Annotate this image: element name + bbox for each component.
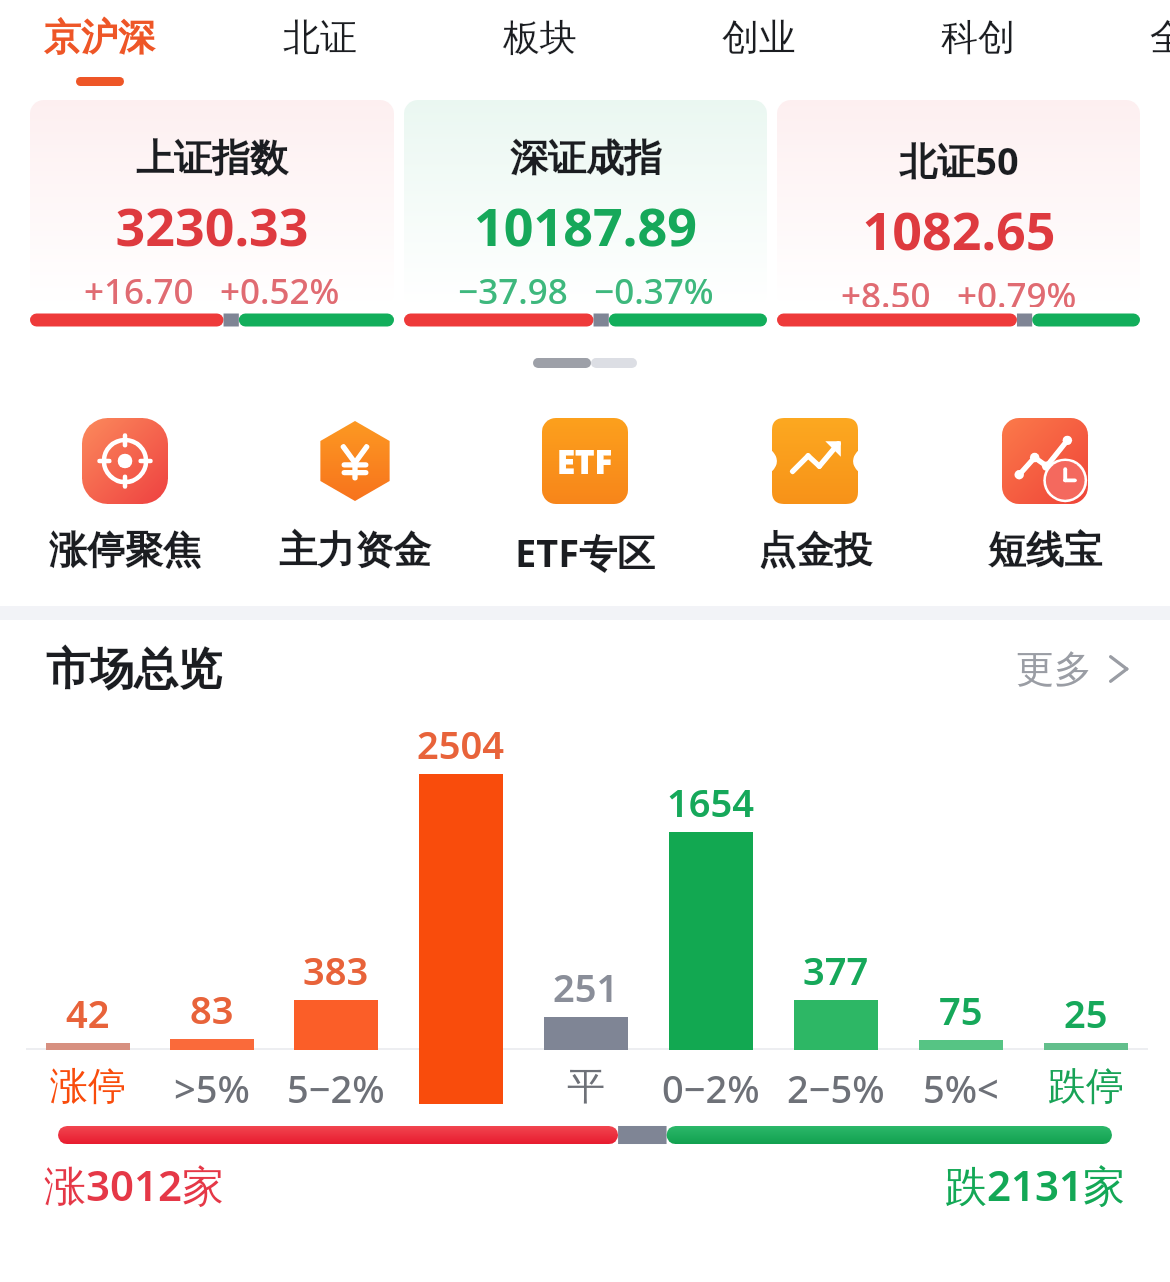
button[interactable]: 383 [274, 718, 398, 1116]
staticText: ETF专区 [515, 526, 656, 578]
button[interactable]: 科创 [941, 14, 1015, 61]
staticText: 点金投 [758, 526, 872, 574]
button[interactable]: 北证50 [777, 100, 1140, 350]
button[interactable]: 2504 [398, 718, 523, 1116]
button[interactable]: 涨停聚焦 [10, 414, 240, 578]
staticText: 更多 [1016, 645, 1092, 693]
button[interactable]: 主力资金 [240, 414, 470, 578]
other: 短线宝 [1002, 418, 1088, 504]
staticText: 市场总览 [46, 642, 222, 697]
staticText: 0−2% [662, 1062, 760, 1114]
staticText: 北证 [283, 14, 357, 61]
staticText: −0.37% [594, 267, 714, 307]
staticText: 京沪深 [44, 14, 155, 61]
staticText: >5% [174, 1062, 250, 1114]
staticText: 科创 [941, 14, 1015, 61]
staticText: 25 [1064, 987, 1108, 1039]
staticText: 5%< [923, 1062, 999, 1114]
button[interactable]: 短线宝 [930, 414, 1160, 578]
staticText: 377 [803, 944, 869, 996]
button[interactable]: 377 [773, 718, 898, 1116]
staticText: 75 [939, 984, 983, 1036]
button[interactable]: 全 [1150, 14, 1170, 61]
staticText: 5−2% [287, 1062, 385, 1114]
staticText: 北证50 [899, 134, 1019, 186]
staticText: 跌停 [1048, 1062, 1124, 1110]
button[interactable]: 1654 [648, 718, 773, 1116]
staticText: 1082.65 [862, 194, 1056, 265]
other: 主力资金 [312, 418, 398, 504]
button[interactable]: 创业 [722, 14, 796, 61]
staticText: 2−5% [787, 1062, 885, 1114]
staticText: +0.52% [220, 267, 340, 307]
staticText: 全 [1150, 14, 1170, 61]
button[interactable]: 75 [898, 718, 1023, 1116]
button[interactable]: 点金投 [700, 414, 930, 578]
staticText: 平 [567, 1062, 605, 1110]
other: 涨停聚焦 [82, 418, 168, 504]
staticText: 创业 [722, 14, 796, 61]
staticText: 涨停聚焦 [49, 526, 201, 574]
staticText: +0.79% [957, 271, 1077, 307]
staticText: −37.98 [458, 267, 568, 307]
staticText: 涨停 [50, 1062, 126, 1110]
staticText: 涨3012家 [44, 1156, 225, 1213]
staticText: 板块 [503, 14, 577, 61]
staticText: 1654 [667, 776, 754, 828]
staticText: +16.70 [84, 267, 194, 307]
staticText: 83 [190, 983, 234, 1035]
button[interactable]: 42 [26, 718, 150, 1116]
button[interactable]: 更多 [1010, 639, 1138, 699]
staticText: 383 [303, 944, 369, 996]
staticText: 42 [66, 987, 110, 1039]
button[interactable]: 25 [1023, 718, 1148, 1116]
button[interactable]: 北证 [283, 14, 357, 61]
staticText: 2504 [417, 718, 504, 770]
staticText: 3230.33 [115, 190, 309, 261]
button[interactable]: 板块 [503, 14, 577, 61]
button[interactable]: 深证成指 [404, 100, 767, 350]
button[interactable]: ETF专区 [470, 414, 700, 582]
button[interactable]: 上证指数 [30, 100, 394, 350]
staticText: 深证成指 [510, 134, 662, 182]
staticText: 10187.89 [474, 190, 697, 261]
staticText: ETF [557, 439, 613, 484]
other: 点金投 [772, 418, 858, 504]
staticText: 短线宝 [988, 526, 1102, 574]
staticText: 跌2131家 [945, 1156, 1126, 1213]
staticText: +8.50 [841, 271, 931, 307]
other: ETF专区 [542, 418, 628, 504]
staticText: 上证指数 [136, 134, 288, 182]
button[interactable]: 京沪深 [44, 14, 155, 86]
button[interactable]: 83 [150, 718, 274, 1116]
staticText: 251 [553, 961, 619, 1013]
staticText: 主力资金 [279, 526, 431, 574]
button[interactable]: 251 [523, 718, 648, 1116]
